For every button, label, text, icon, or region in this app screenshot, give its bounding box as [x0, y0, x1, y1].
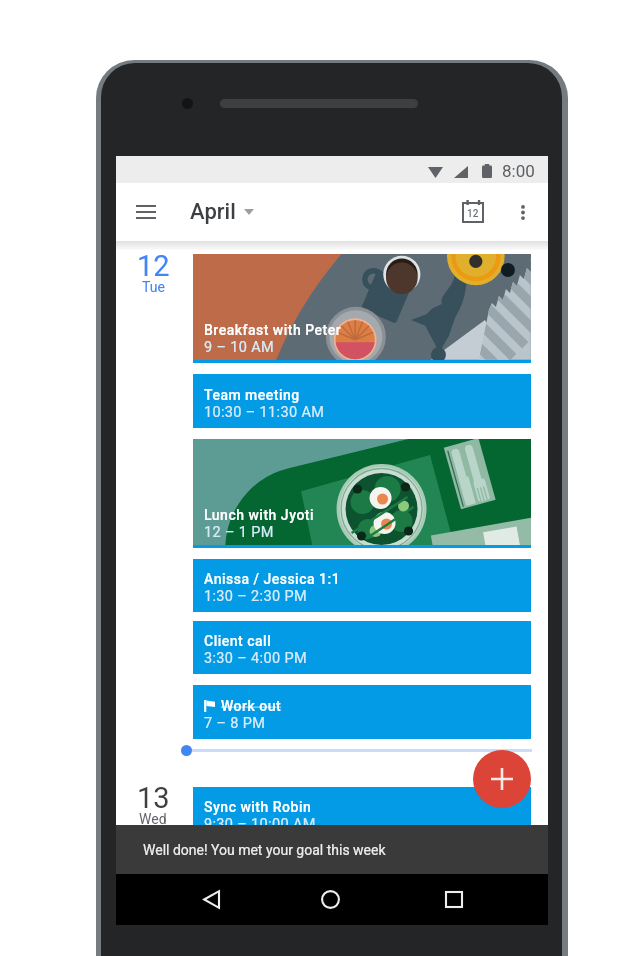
button[interactable]: Sync with Robin [193, 787, 531, 840]
button[interactable]: Recent apps [430, 874, 478, 924]
staticText: Tue [142, 279, 165, 295]
staticText: 3:30 – 4:00 PM [204, 650, 307, 667]
button[interactable]: Breakfast with Peter [193, 254, 531, 363]
button[interactable]: Back [187, 874, 235, 924]
staticText: Anissa / Jessica 1:1 [204, 571, 341, 587]
staticText: 8:00 [502, 161, 535, 181]
staticText: Well done! You met your goal this week [143, 842, 386, 858]
button[interactable]: Work out [193, 685, 531, 739]
button[interactable]: Go to today [451, 189, 495, 233]
staticText: 12 – 1 PM [204, 524, 274, 541]
staticText: 9:30 – 10:00 AM [204, 816, 316, 833]
staticText: 13 [137, 781, 170, 815]
button[interactable]: April [190, 190, 254, 234]
staticText: 1:30 – 2:30 PM [204, 588, 307, 605]
button[interactable]: Team meeting [193, 374, 531, 428]
button[interactable]: Client call [193, 621, 531, 674]
staticText: 9 – 10 AM [204, 339, 275, 356]
button[interactable]: Lunch with Jyoti [193, 439, 531, 548]
button[interactable]: Create new event [473, 750, 531, 808]
button[interactable]: More options [501, 190, 545, 234]
button[interactable]: Anissa / Jessica 1:1 [193, 559, 531, 612]
staticText: Wed [139, 811, 167, 827]
staticText: Lunch with Jyoti [204, 507, 315, 523]
button[interactable]: Home [306, 874, 354, 924]
staticText: Team meeting [204, 387, 300, 403]
button[interactable]: Open navigation drawer [124, 190, 168, 234]
staticText: April [190, 199, 236, 225]
staticText: Sync with Robin [204, 799, 312, 815]
staticText: 12 [467, 208, 479, 220]
staticText: Breakfast with Peter [204, 322, 342, 338]
staticText: 7 – 8 PM [204, 715, 266, 732]
staticText: 10:30 – 11:30 AM [204, 404, 325, 421]
staticText: Client call [204, 633, 272, 649]
staticText: 12 [137, 249, 170, 283]
staticText: Work out [221, 698, 282, 714]
